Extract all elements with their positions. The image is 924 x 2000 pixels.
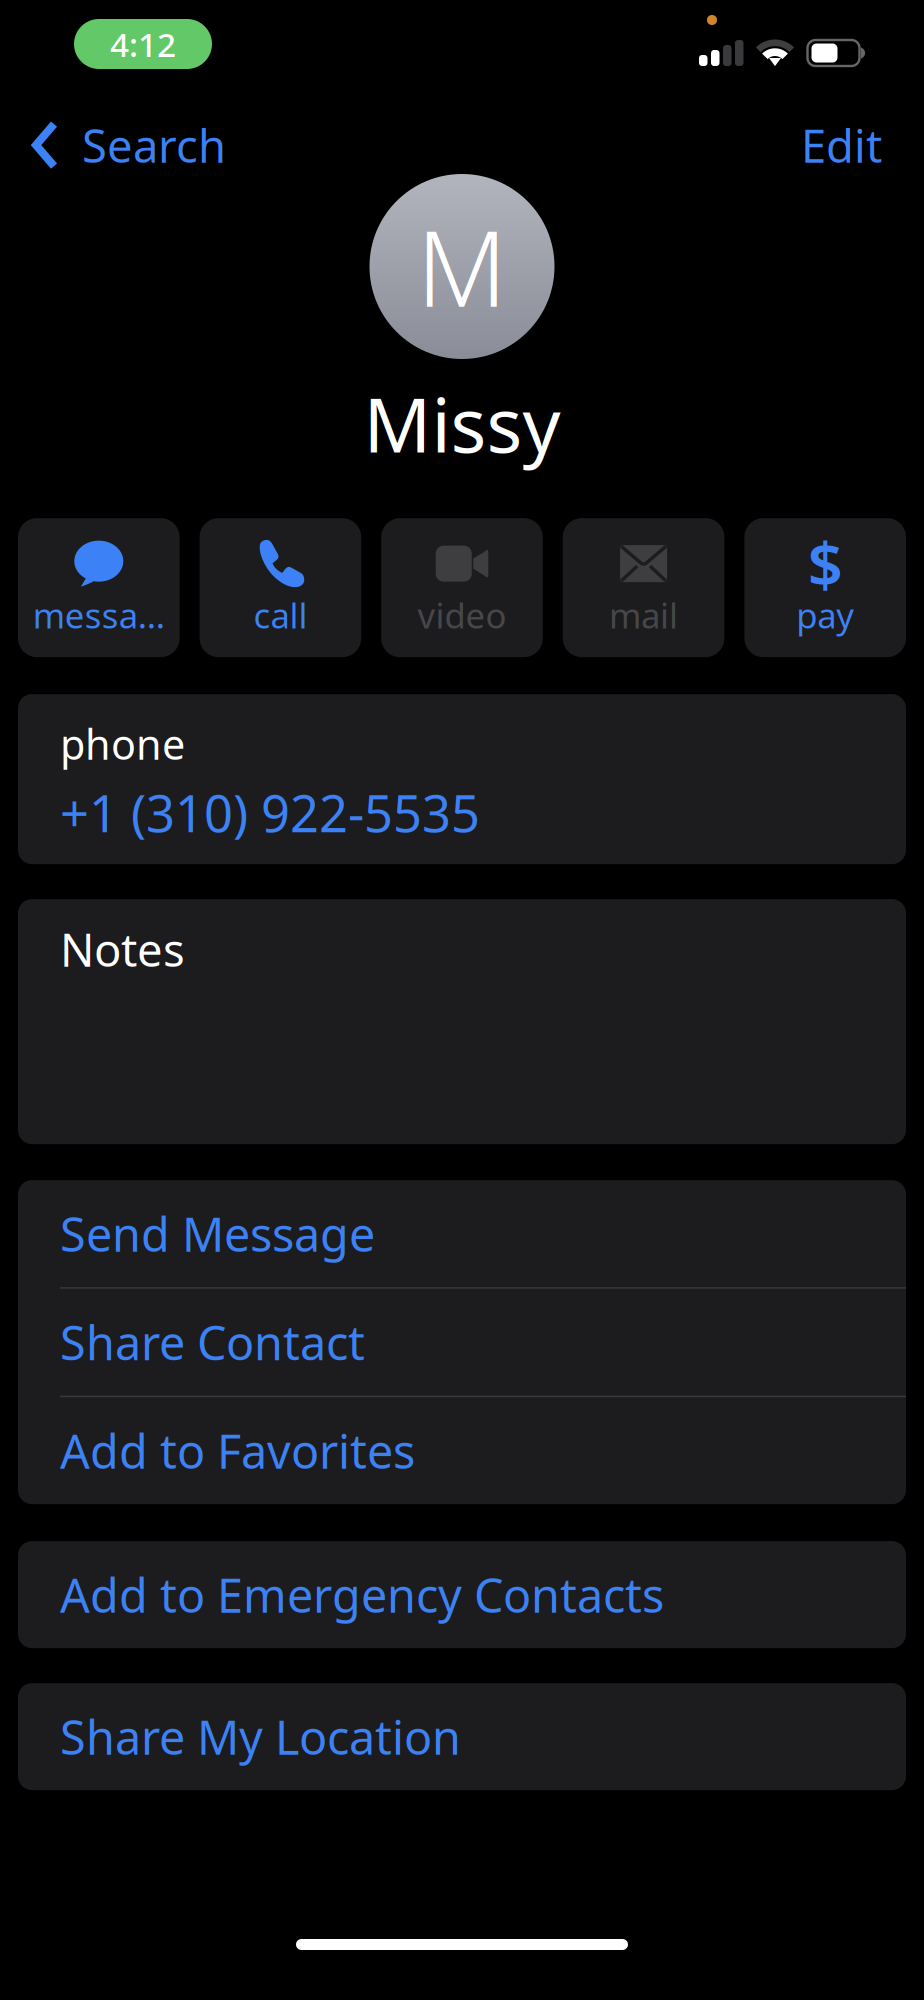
staticText: $ <box>808 523 843 604</box>
button[interactable]: messa... <box>18 518 180 657</box>
staticText: call <box>253 592 307 638</box>
staticText: Edit <box>801 115 882 175</box>
staticText: video <box>417 592 506 638</box>
staticText: M <box>416 197 507 335</box>
button[interactable]: Add to Emergency Contacts <box>18 1541 906 1648</box>
button[interactable]: call <box>200 518 361 657</box>
staticText: Missy <box>363 374 560 473</box>
staticText: Send Message <box>60 1203 375 1265</box>
staticText: Add to Emergency Contacts <box>60 1564 664 1626</box>
button[interactable]: Add to Favorites <box>18 1397 906 1504</box>
staticText: pay <box>796 592 854 638</box>
button[interactable]: Share My Location <box>18 1683 906 1790</box>
button[interactable]: $ <box>744 518 906 657</box>
button[interactable]: Send Message <box>18 1180 906 1287</box>
button[interactable]: Share Contact <box>18 1289 906 1396</box>
staticText: 4:12 <box>110 22 176 66</box>
button[interactable]: video <box>381 518 543 657</box>
staticText: Share My Location <box>60 1706 461 1768</box>
staticText: messa... <box>33 592 165 638</box>
button[interactable]: phone <box>18 694 906 864</box>
staticText: +1 (310) 922-5535 <box>60 779 480 846</box>
staticText: Add to Favorites <box>60 1420 415 1482</box>
staticText: phone <box>60 716 185 771</box>
staticText: Search <box>82 115 226 175</box>
staticText: Share Contact <box>60 1311 365 1373</box>
staticText: mail <box>609 592 678 638</box>
staticText: Notes <box>60 919 185 979</box>
button[interactable]: Edit <box>801 108 924 182</box>
button[interactable]: Search <box>0 108 226 182</box>
button[interactable]: mail <box>563 518 724 657</box>
